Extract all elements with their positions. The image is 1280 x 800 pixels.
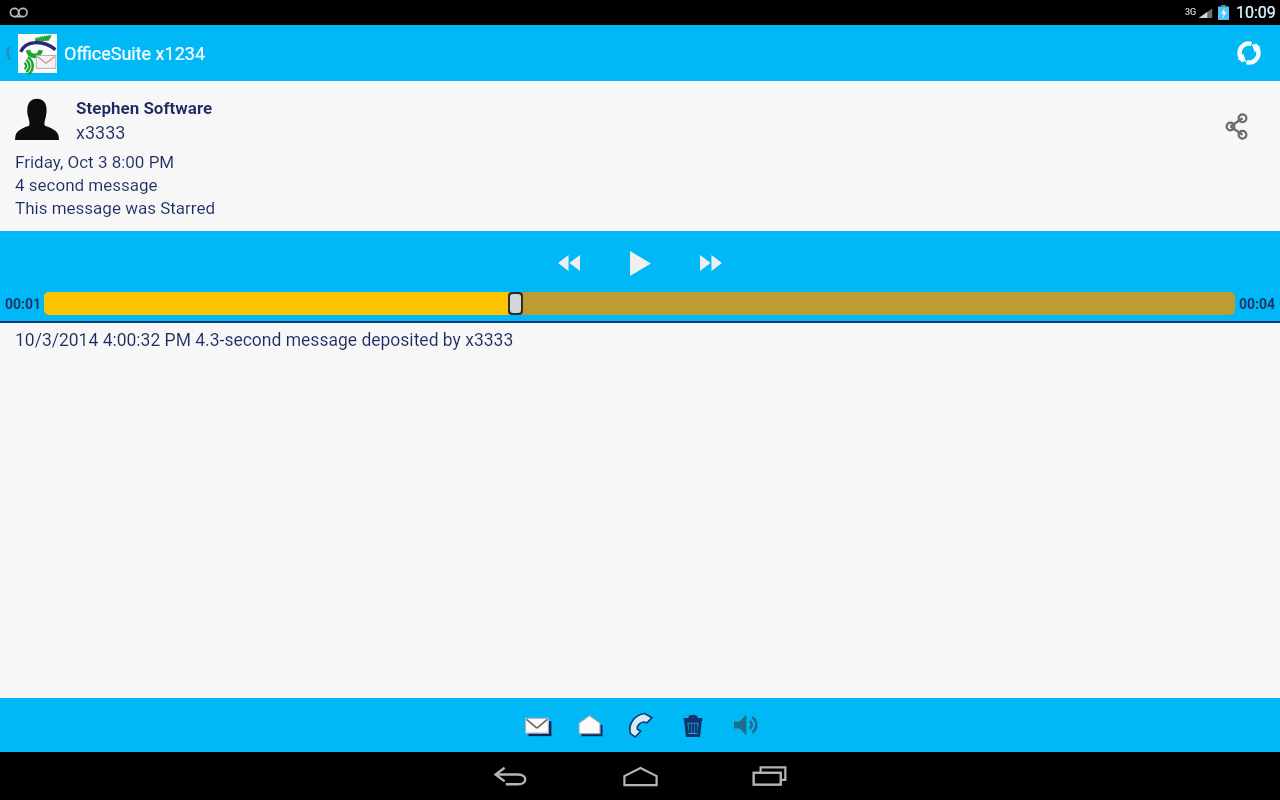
staticText: Friday, Oct 3 8:00 PM <box>15 152 175 172</box>
staticText: 10/3/2014 4:00:32 PM 4.3-second message … <box>15 330 514 351</box>
staticText: 00:04 <box>1239 296 1276 312</box>
staticText: 10:09 <box>1236 3 1276 22</box>
button[interactable]: Call back <box>629 710 657 740</box>
button[interactable]: New message <box>525 710 551 740</box>
button[interactable]: Share <box>1212 102 1261 151</box>
button[interactable]: Speaker <box>734 710 762 740</box>
button[interactable]: Play <box>616 244 664 282</box>
button[interactable]: Back <box>461 752 561 800</box>
staticText: OfficeSuite x1234 <box>64 43 205 64</box>
button[interactable]: Open message <box>577 710 602 740</box>
staticText: This message was Starred <box>15 198 216 218</box>
button[interactable]: Home <box>590 752 690 800</box>
staticText: x3333 <box>76 122 126 143</box>
button[interactable]: Navigate up <box>0 25 16 81</box>
button[interactable]: Rewind <box>545 244 593 282</box>
button[interactable]: Refresh <box>1227 31 1271 75</box>
staticText: 3G <box>1185 7 1197 18</box>
staticText: 4 second message <box>15 175 158 195</box>
button[interactable]: Recent apps <box>719 752 819 800</box>
staticText: Stephen Software <box>76 98 213 118</box>
button[interactable]: Fast forward <box>687 244 735 282</box>
button[interactable]: Delete <box>682 710 704 740</box>
staticText: 00:01 <box>5 296 42 312</box>
